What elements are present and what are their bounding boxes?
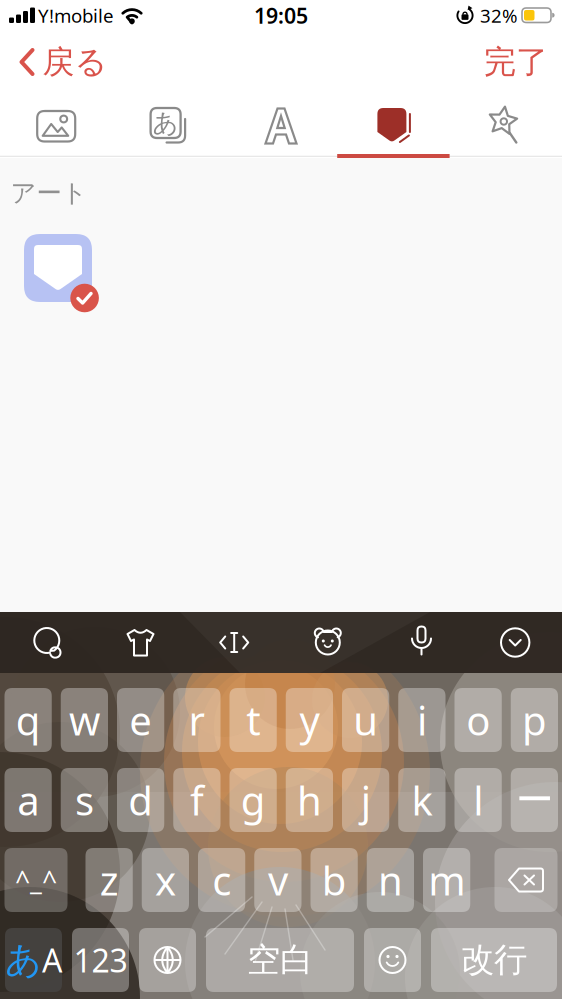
button[interactable]: n: [367, 848, 414, 912]
button[interactable]: m: [423, 848, 470, 912]
button[interactable]: 空白: [206, 928, 354, 992]
button[interactable]: 音声入力: [376, 612, 466, 672]
staticText: a: [17, 773, 39, 826]
staticText: あ: [153, 107, 179, 138]
button[interactable]: j: [342, 768, 389, 832]
staticText: あ: [5, 938, 42, 982]
staticText: j: [361, 773, 371, 826]
staticText: 戻る: [42, 42, 107, 82]
staticText: A: [42, 939, 62, 981]
button[interactable]: 絵文字: [364, 928, 421, 992]
button[interactable]: l: [454, 768, 502, 832]
button[interactable]: t: [229, 688, 277, 752]
staticText: b: [322, 853, 347, 906]
staticText: 空白: [247, 939, 313, 980]
button[interactable]: キーボードを閉じる: [470, 612, 560, 672]
button[interactable]: スタンプ: [283, 612, 373, 672]
button[interactable]: バッジ: [337, 97, 449, 155]
staticText: m: [428, 853, 465, 906]
staticText: Y!mobile: [38, 3, 114, 28]
staticText: ^_^: [15, 862, 57, 898]
staticText: q: [16, 693, 41, 746]
staticText: 19:05: [254, 1, 308, 30]
button[interactable]: 完了: [476, 40, 556, 84]
button[interactable]: v: [254, 848, 301, 912]
button[interactable]: h: [286, 768, 333, 832]
button[interactable]: y: [286, 688, 333, 752]
staticText: 完了: [484, 42, 548, 82]
staticText: f: [190, 773, 204, 826]
staticText: k: [411, 773, 432, 826]
button[interactable]: e: [117, 688, 164, 752]
staticText: x: [155, 853, 176, 906]
button[interactable]: o: [454, 688, 502, 752]
staticText: p: [522, 693, 547, 746]
staticText: 32%: [480, 3, 518, 28]
button[interactable]: きせかえ: [113, 97, 225, 155]
staticText: y: [299, 693, 319, 746]
staticText: s: [75, 773, 94, 826]
button[interactable]: アート: [24, 234, 104, 314]
button[interactable]: s: [61, 768, 108, 832]
button[interactable]: かな英字切替: [5, 928, 62, 992]
button[interactable]: a: [4, 768, 52, 832]
button[interactable]: 戻る: [15, 40, 111, 84]
button[interactable]: b: [310, 848, 358, 912]
button[interactable]: x: [142, 848, 189, 912]
button[interactable]: i: [398, 688, 445, 752]
button[interactable]: c: [198, 848, 245, 912]
button[interactable]: フォント: [225, 97, 337, 155]
button[interactable]: u: [342, 688, 389, 752]
staticText: u: [353, 693, 378, 746]
staticText: t: [246, 693, 260, 746]
staticText: 改行: [461, 939, 527, 980]
button[interactable]: きせかえ: [95, 612, 185, 672]
button[interactable]: 削除: [494, 848, 557, 912]
staticText: d: [128, 773, 153, 826]
button[interactable]: p: [511, 688, 558, 752]
button[interactable]: 改行: [431, 928, 557, 992]
button[interactable]: スタンプ: [450, 97, 562, 155]
button[interactable]: z: [85, 848, 133, 912]
staticText: ー: [516, 777, 553, 823]
staticText: アート: [10, 177, 87, 208]
staticText: l: [473, 773, 483, 826]
staticText: v: [268, 853, 288, 906]
button[interactable]: ^_^: [4, 848, 67, 912]
button[interactable]: r: [173, 688, 220, 752]
button[interactable]: 画像: [0, 97, 112, 155]
staticText: n: [378, 853, 403, 906]
button[interactable]: マスコット: [2, 612, 92, 672]
button[interactable]: k: [398, 768, 445, 832]
button[interactable]: 123: [72, 928, 129, 992]
staticText: h: [297, 773, 322, 826]
button[interactable]: カーソル: [189, 612, 279, 672]
button[interactable]: 次のキーボード: [139, 928, 196, 992]
staticText: i: [417, 693, 427, 746]
button[interactable]: d: [117, 768, 164, 832]
staticText: e: [129, 693, 152, 746]
staticText: w: [69, 693, 100, 746]
button[interactable]: g: [229, 768, 277, 832]
button[interactable]: ー: [511, 768, 558, 832]
button[interactable]: w: [61, 688, 108, 752]
button[interactable]: q: [4, 688, 52, 752]
button[interactable]: f: [173, 768, 220, 832]
staticText: z: [100, 853, 119, 906]
staticText: g: [241, 773, 266, 826]
staticText: r: [188, 693, 205, 746]
staticText: c: [212, 853, 231, 906]
staticText: o: [466, 693, 490, 746]
staticText: 123: [73, 939, 127, 981]
